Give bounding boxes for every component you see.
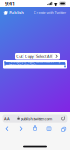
staticText: Select All xyxy=(36,54,52,59)
staticText: publish.twitter.com xyxy=(21,116,53,121)
button[interactable]: Copy xyxy=(24,53,35,59)
staticText: Cut xyxy=(16,54,22,59)
staticText: Copy xyxy=(25,54,34,59)
button[interactable]: Tabs xyxy=(56,123,70,135)
button[interactable]: Back xyxy=(0,123,14,135)
button[interactable]: publish.twitter.com xyxy=(17,114,53,123)
staticText: <blockquote class="twitter-tweet"><p lan… xyxy=(9,60,61,67)
staticText: 9:41 xyxy=(5,0,15,7)
button[interactable]: Page settings xyxy=(2,114,11,123)
button[interactable]: Create with Twitter xyxy=(33,8,66,17)
staticText: Publish xyxy=(9,10,24,15)
button[interactable]: Bookmarks xyxy=(42,123,56,135)
button[interactable]: Forward xyxy=(14,123,28,135)
staticText: Create with Twitter xyxy=(33,10,66,15)
staticText: AA xyxy=(4,116,10,121)
button[interactable]: Share xyxy=(28,123,42,135)
button[interactable]: Cut xyxy=(15,53,23,59)
button[interactable]: Reload xyxy=(58,114,67,123)
button[interactable]: More xyxy=(53,53,60,59)
button[interactable]: Publish xyxy=(3,8,24,17)
button[interactable]: Select All xyxy=(35,53,53,59)
